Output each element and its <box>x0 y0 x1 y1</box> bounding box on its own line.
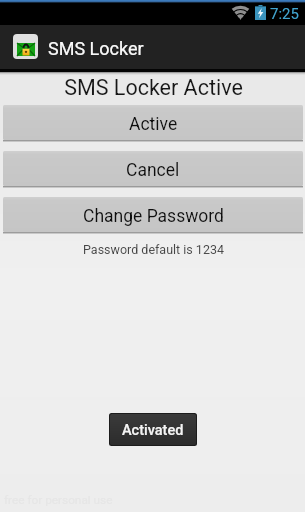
staticText: Cancel <box>126 160 180 181</box>
staticText: Activated <box>122 422 184 439</box>
staticText: Change Password <box>83 206 224 227</box>
staticText: 7:25 <box>270 5 299 23</box>
button[interactable]: Cancel <box>3 151 303 188</box>
button[interactable]: Active <box>3 105 303 142</box>
staticText: SMS Locker <box>48 38 144 59</box>
button[interactable]: Change Password <box>3 197 303 234</box>
staticText: Active <box>129 114 178 135</box>
staticText: SMS Locker Active <box>1 75 305 100</box>
staticText: Password default is 1234 <box>1 242 305 257</box>
